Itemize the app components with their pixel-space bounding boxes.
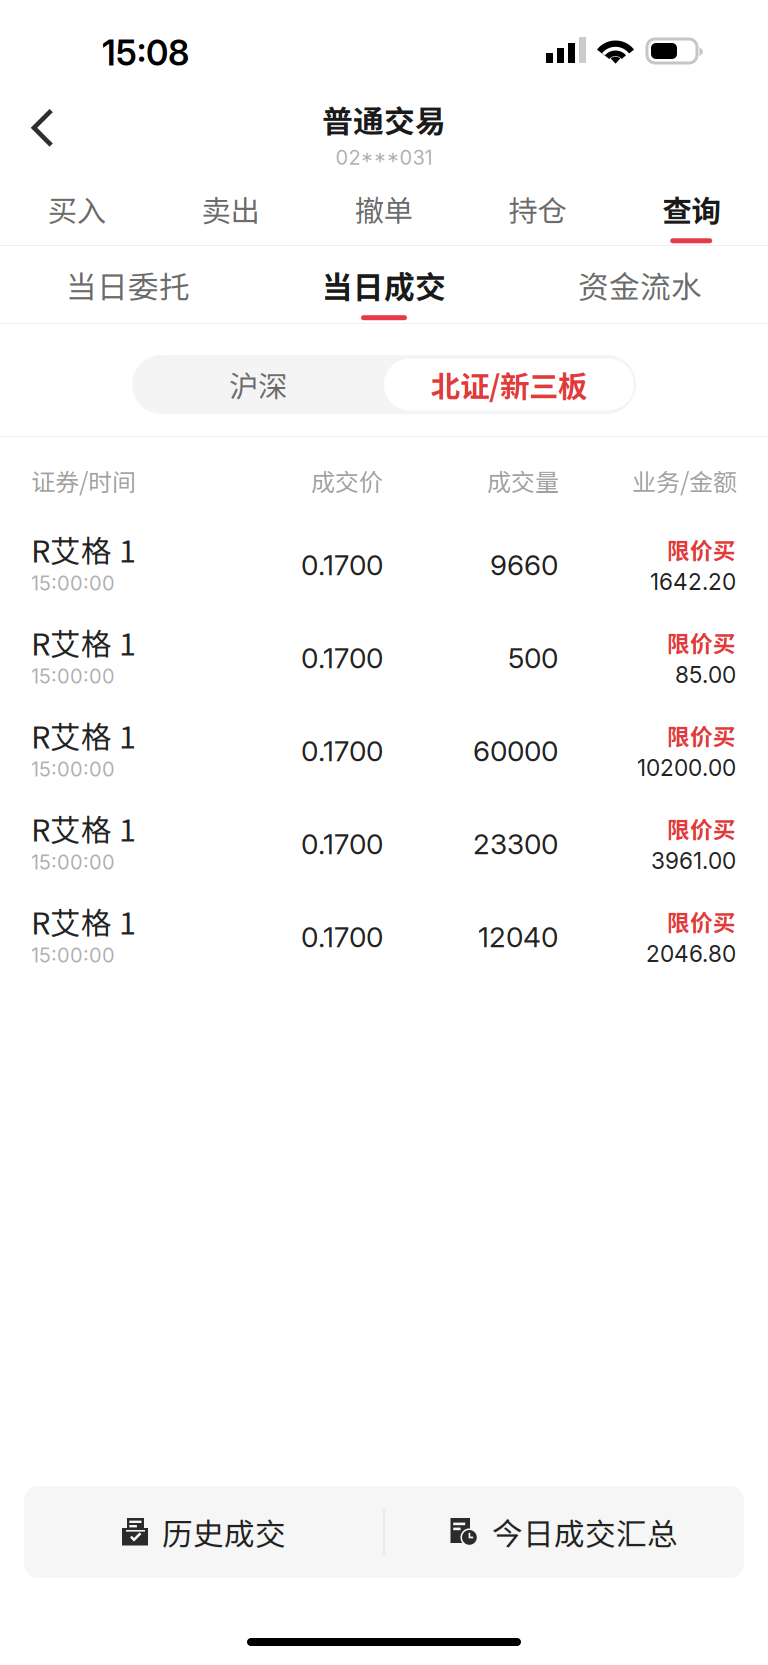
staticText: 2046.80 [646, 940, 736, 967]
staticText: R艾格 1 [31, 899, 136, 943]
button[interactable]: 买入 [0, 188, 154, 245]
staticText: 23300 [473, 827, 558, 861]
staticText: 限价买 [667, 719, 736, 752]
staticText: 12040 [478, 920, 558, 954]
staticText: 15:00:00 [31, 850, 115, 874]
staticText: 85.00 [675, 661, 736, 688]
button[interactable]: 撤单 [307, 188, 461, 245]
staticText: 持仓 [509, 188, 567, 230]
button[interactable]: 资金流水 [512, 246, 768, 323]
staticText: 15:08 [102, 32, 189, 74]
staticText: 0.1700 [301, 734, 383, 768]
button[interactable]: 持仓 [461, 188, 614, 245]
staticText: 10200.00 [637, 754, 736, 781]
button[interactable]: 卖出 [154, 188, 307, 245]
staticText: 0.1700 [301, 641, 383, 675]
staticText: 15:00:00 [31, 664, 115, 688]
staticText: 当日委托 [66, 263, 190, 307]
staticText: 成交价 [311, 463, 383, 498]
staticText: 普通交易 [322, 97, 446, 141]
staticText: R艾格 1 [31, 806, 136, 850]
staticText: 成交量 [487, 463, 559, 498]
staticText: 今日成交汇总 [492, 1510, 678, 1554]
staticText: 限价买 [667, 812, 736, 845]
staticText: 0.1700 [301, 920, 383, 954]
button[interactable]: R艾格 1 [0, 514, 768, 607]
button[interactable]: 北证/新三板 [384, 358, 634, 410]
staticText: 02***031 [335, 145, 432, 170]
staticText: 查询 [662, 188, 720, 230]
button[interactable]: 当日委托 [0, 246, 256, 323]
staticText: 3961.00 [651, 847, 736, 874]
button[interactable]: R艾格 1 [0, 886, 768, 979]
staticText: 60000 [473, 734, 558, 768]
staticText: 证券/时间 [31, 463, 136, 498]
button[interactable]: R艾格 1 [0, 700, 768, 793]
staticText: R艾格 1 [31, 527, 136, 571]
button[interactable]: 历史成交 [24, 1486, 384, 1578]
staticText: 买入 [48, 188, 106, 230]
button[interactable]: 当日成交 [256, 246, 512, 323]
button[interactable]: R艾格 1 [0, 793, 768, 886]
staticText: 北证/新三板 [431, 363, 587, 406]
button[interactable]: 今日成交汇总 [384, 1486, 744, 1578]
staticText: 卖出 [201, 188, 259, 230]
staticText: R艾格 1 [31, 620, 136, 664]
staticText: 15:00:00 [31, 757, 115, 781]
staticText: R艾格 1 [31, 713, 136, 757]
staticText: 业务/金额 [632, 463, 737, 498]
staticText: 15:00:00 [31, 943, 115, 967]
staticText: 限价买 [667, 626, 736, 659]
staticText: 15:00:00 [31, 571, 115, 595]
staticText: 当日成交 [322, 263, 446, 307]
staticText: 9660 [490, 548, 558, 582]
staticText: 历史成交 [162, 1510, 286, 1554]
staticText: 撤单 [355, 188, 413, 230]
staticText: 限价买 [667, 905, 736, 938]
staticText: 0.1700 [301, 548, 383, 582]
button[interactable]: 沪深 [132, 355, 384, 414]
staticText: 资金流水 [578, 263, 702, 307]
staticText: 0.1700 [301, 827, 383, 861]
staticText: 限价买 [667, 533, 736, 566]
staticText: 沪深 [229, 363, 287, 406]
button[interactable]: R艾格 1 [0, 607, 768, 700]
button[interactable]: 返回 [0, 97, 84, 173]
button[interactable]: 查询 [614, 188, 768, 245]
staticText: 1642.20 [650, 568, 736, 595]
staticText: 500 [508, 641, 558, 675]
